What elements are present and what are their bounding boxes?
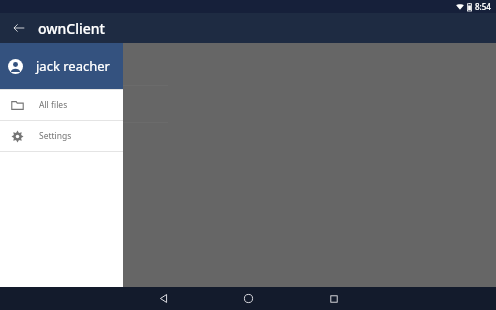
button[interactable]: Recent apps (291, 287, 376, 310)
button[interactable]: Home (206, 287, 291, 310)
button[interactable]: Navigate up (8, 17, 30, 39)
staticText: Settings (39, 130, 72, 142)
staticText: All files (39, 99, 68, 111)
button[interactable]: All files (0, 90, 123, 120)
button[interactable]: jack reacher (0, 43, 123, 89)
staticText: jack reacher (36, 57, 110, 75)
button[interactable]: Settings (0, 121, 123, 151)
button[interactable]: Back (121, 287, 206, 310)
staticText: ownClient (38, 19, 105, 38)
staticText: 8:54 (475, 1, 491, 12)
